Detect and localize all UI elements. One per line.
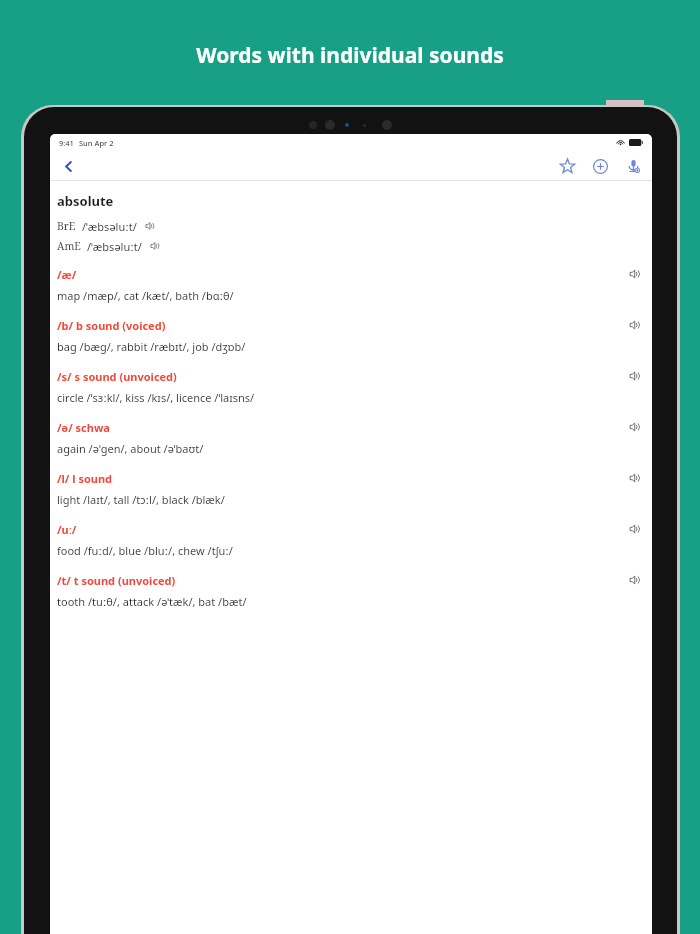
button[interactable]: /æ/ [50, 265, 652, 283]
staticText: absolute [57, 192, 114, 210]
staticText: /t/ t sound (unvoiced) [57, 573, 627, 588]
staticText: /b/ b sound (voiced) [57, 318, 627, 333]
button[interactable]: /ə/ schwa [50, 418, 652, 436]
staticText: /l/ l sound [57, 471, 627, 486]
staticText: /s/ s sound (unvoiced) [57, 369, 627, 384]
staticText: /æ/ [57, 267, 627, 282]
button[interactable]: Add [588, 154, 612, 178]
staticText: 9:41 [59, 138, 74, 148]
button[interactable]: Play /t/ t sound (unvoiced) [627, 571, 645, 589]
button[interactable]: /l/ l sound [50, 469, 652, 487]
staticText: Words with individual sounds [0, 41, 700, 70]
button[interactable]: /b/ b sound (voiced) [50, 316, 652, 334]
button[interactable]: /uː/ [50, 520, 652, 538]
button[interactable]: Play /b/ b sound (voiced) [627, 316, 645, 334]
button[interactable]: BrE [50, 218, 652, 234]
staticText: food /fuːd/, blue /bluː/, chew /tʃuː/ [57, 543, 233, 558]
staticText: circle /ˈsɜːkl/, kiss /kɪs/, licence /ˈl… [57, 390, 255, 405]
staticText: map /mæp/, cat /kæt/, bath /bɑːθ/ [57, 288, 234, 303]
staticText: AmE [57, 239, 81, 253]
staticText: /ˈæbsəluːt/ [87, 239, 142, 254]
button[interactable]: AmE [50, 238, 652, 254]
button[interactable]: Play /æ/ [627, 265, 645, 283]
staticText: /ə/ schwa [57, 420, 627, 435]
staticText: /ˈæbsəluːt/ [82, 219, 137, 234]
staticText: BrE [57, 219, 76, 233]
button[interactable]: /s/ s sound (unvoiced) [50, 367, 652, 385]
staticText: Sun Apr 2 [79, 138, 114, 148]
staticText: tooth /tuːθ/, attack /əˈtæk/, bat /bæt/ [57, 594, 247, 609]
button[interactable]: Favourite [555, 154, 579, 178]
button[interactable]: Play AmE pronunciation [148, 238, 164, 254]
button[interactable]: /t/ t sound (unvoiced) [50, 571, 652, 589]
staticText: /uː/ [57, 522, 627, 537]
button[interactable]: Back [57, 155, 79, 177]
button[interactable]: Play /s/ s sound (unvoiced) [627, 367, 645, 385]
staticText: again /əˈɡen/, about /əˈbaʊt/ [57, 441, 204, 456]
staticText: light /laɪt/, tall /tɔːl/, black /blæk/ [57, 492, 225, 507]
staticText: bag /bæɡ/, rabbit /ræbɪt/, job /dʒɒb/ [57, 339, 246, 354]
button[interactable]: Play /uː/ [627, 520, 645, 538]
button[interactable]: Play /ə/ schwa [627, 418, 645, 436]
button[interactable]: Record pronunciation [621, 154, 645, 178]
button[interactable]: Play /l/ l sound [627, 469, 645, 487]
button[interactable]: Play BrE pronunciation [143, 218, 159, 234]
